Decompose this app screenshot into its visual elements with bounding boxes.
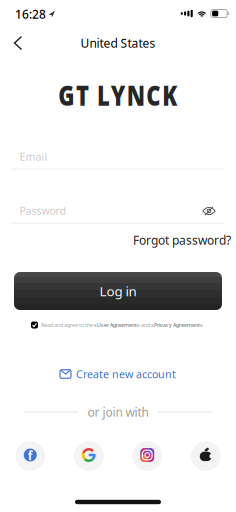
button[interactable]: «Privacy Agreement»	[151, 321, 203, 329]
staticText: Create new account	[76, 367, 176, 381]
button[interactable]: Forgot password?	[133, 232, 231, 248]
button[interactable]: Back	[7, 30, 28, 55]
staticText: and	[140, 321, 151, 329]
button[interactable]: Sign in with Instagram	[132, 441, 162, 471]
button[interactable]: Show password	[199, 203, 219, 219]
staticText: 16:28	[15, 6, 46, 22]
button[interactable]: United States	[80, 35, 155, 51]
button[interactable]: Sign in with Google	[74, 441, 104, 471]
staticText: Password	[19, 203, 66, 218]
staticText: Email	[19, 149, 47, 164]
button[interactable]: Password	[11, 203, 225, 224]
staticText: Forgot password?	[133, 232, 231, 248]
button[interactable]: Sign in with Apple	[191, 441, 221, 471]
staticText: Log in	[99, 282, 136, 300]
staticText: «User Agreement»	[94, 321, 140, 329]
staticText: United States	[80, 35, 155, 51]
button[interactable]: Create new account	[60, 367, 176, 381]
button[interactable]: Sign in with Facebook	[15, 441, 45, 471]
button[interactable]: Log in	[14, 272, 222, 310]
staticText: «Privacy Agreement»	[151, 321, 203, 329]
button[interactable]: Email	[11, 149, 225, 170]
staticText: GT LYNCK	[56, 80, 180, 110]
staticText: or join with	[87, 404, 148, 420]
button[interactable]: Agree to terms	[31, 321, 38, 328]
button[interactable]: «User Agreement»	[94, 321, 140, 329]
staticText: Read and agree to the	[41, 321, 94, 329]
staticText: f	[28, 447, 33, 463]
